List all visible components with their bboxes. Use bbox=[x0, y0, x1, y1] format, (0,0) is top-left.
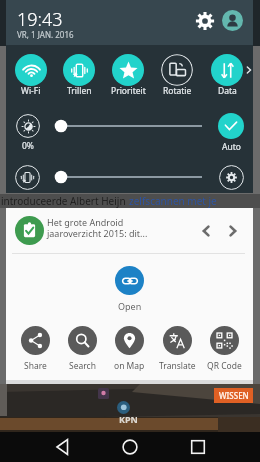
button[interactable]: Trillen bbox=[55, 54, 103, 97]
staticText: VR, 1 JAN. 2016 bbox=[17, 29, 74, 40]
button[interactable]: Prioriteit bbox=[104, 54, 152, 97]
button[interactable]: on Map bbox=[106, 326, 153, 372]
button[interactable]: WISSEN bbox=[214, 388, 253, 403]
button[interactable]: Rotatie bbox=[153, 54, 201, 97]
staticText: KPN bbox=[119, 413, 138, 425]
staticText: 19:43 bbox=[17, 7, 63, 32]
button[interactable]: Search bbox=[59, 326, 106, 372]
staticText: jaaroverzicht 2015: dit... bbox=[47, 227, 148, 239]
staticText: Open bbox=[118, 300, 142, 312]
staticText: zelfscannen met je bbox=[129, 194, 217, 208]
button[interactable]: Back bbox=[51, 435, 75, 459]
button[interactable]: Settings bbox=[194, 10, 216, 32]
staticText: Rotatie bbox=[163, 85, 192, 97]
button[interactable]: QR Code bbox=[201, 326, 248, 372]
button[interactable]: Settings bbox=[219, 165, 244, 190]
staticText: on Map bbox=[114, 360, 145, 372]
staticText: introduceerde Albert Heijn bbox=[1, 194, 129, 208]
staticText: Het grote Android bbox=[47, 216, 124, 228]
staticText: WISSEN bbox=[219, 390, 249, 401]
button[interactable]: Previous bbox=[196, 221, 216, 241]
button[interactable]: Data bbox=[203, 54, 251, 97]
staticText: Translate bbox=[159, 360, 196, 372]
button[interactable]: User bbox=[222, 10, 243, 31]
staticText: Wi-Fi bbox=[21, 85, 41, 97]
staticText: Trillen bbox=[67, 85, 92, 97]
button[interactable]: Next bbox=[223, 221, 243, 241]
staticText: Search bbox=[69, 360, 96, 372]
button[interactable]: Wi-Fi bbox=[7, 54, 55, 97]
button[interactable]: Share bbox=[12, 326, 59, 372]
staticText: Auto bbox=[222, 141, 241, 153]
button[interactable]: Open bbox=[106, 266, 153, 312]
button[interactable]: Home bbox=[118, 435, 142, 459]
button[interactable]: Translate bbox=[154, 326, 201, 372]
staticText: Data bbox=[218, 85, 237, 97]
staticText: QR Code bbox=[207, 360, 242, 372]
button[interactable]: Auto bbox=[212, 113, 250, 153]
staticText: Share bbox=[24, 360, 47, 372]
staticText: Prioriteit bbox=[111, 85, 146, 97]
button[interactable]: Recents bbox=[186, 435, 210, 459]
staticText: 0% bbox=[22, 140, 34, 152]
